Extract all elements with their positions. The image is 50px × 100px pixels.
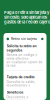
staticText: Beneficios: [6, 90, 23, 94]
staticText: Consulta tu saldo, movimientos y: [6, 80, 35, 87]
staticText: Retiro sin tarjeta: [11, 37, 37, 41]
staticText: en cualquier cajero de la red.: [6, 60, 42, 67]
staticText: Tarjeta de credito: [6, 75, 34, 79]
staticText: Solicita tu retiro en segundos: [6, 44, 36, 52]
staticText: Paga o retira sin tarjeta y: [4, 10, 49, 15]
staticText: sin costo, solo aplican los: [4, 15, 47, 20]
staticText: Genera un codigo y retira efectivo: [6, 53, 37, 60]
staticText: gastos de la red del cajero: [4, 20, 50, 24]
staticText: Descuentos y promociones: [6, 95, 28, 100]
